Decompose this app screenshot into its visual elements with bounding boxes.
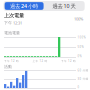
staticText: 電池電量 [4,30,20,35]
staticText: 0% [77,55,81,58]
button[interactable]: 過去 10 天 [45,2,84,10]
staticText: 過去 24 小時 [10,2,38,10]
staticText: 100% [74,16,83,22]
staticText: 活動 [4,64,12,69]
staticText: 0 [77,86,79,89]
staticText: 上午 12 時 [32,59,47,63]
staticText: 下午 12 時 [61,59,76,63]
staticText: 下午 12 時 [4,59,19,63]
staticText: 50% [77,45,83,49]
staticText: 下午 12:31 [4,20,22,25]
staticText: 100% [77,36,85,39]
staticText: 60 分鐘 [77,69,88,72]
staticText: 上次電量 [4,12,24,19]
button[interactable]: 過去 24 小時 [5,2,44,10]
staticText: 30 分鐘 [77,77,88,81]
staticText: 過去 10 天 [53,2,76,10]
